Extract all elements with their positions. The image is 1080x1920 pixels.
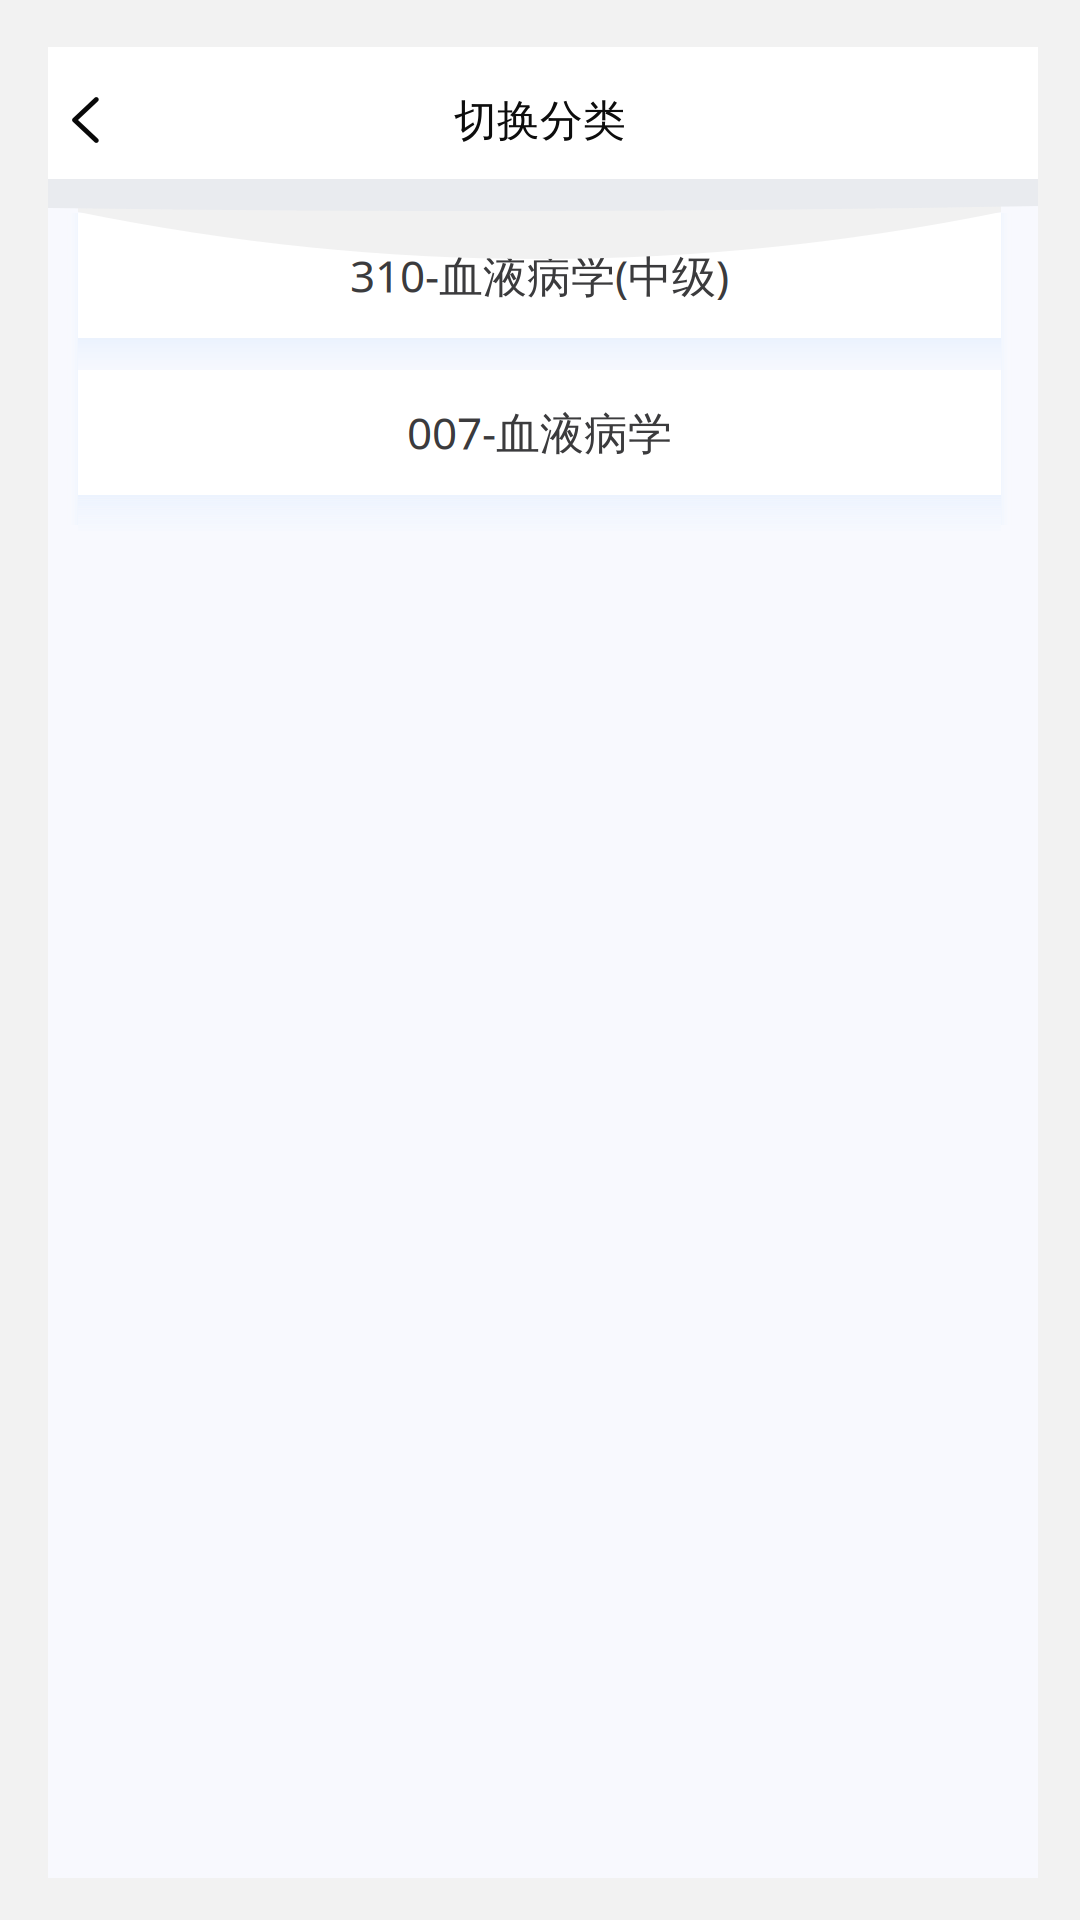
button[interactable]: Back	[48, 47, 128, 179]
staticText: 切换分类	[454, 95, 626, 147]
staticText: 007-血液病学	[407, 403, 672, 462]
button[interactable]: 310-血液病学(中级)	[78, 213, 1001, 338]
staticText: 310-血液病学(中级)	[350, 246, 729, 305]
button[interactable]: 007-血液病学	[78, 370, 1001, 495]
